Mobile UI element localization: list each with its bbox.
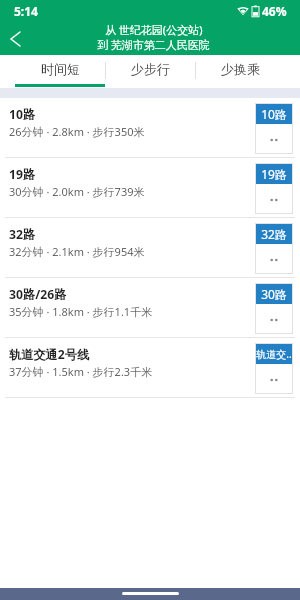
staticText: 32路: [261, 226, 287, 242]
button[interactable]: 少步行: [105, 55, 195, 88]
staticText: 30路/26路: [9, 286, 67, 303]
staticText: 30分钟 · 2.0km · 步行739米: [9, 184, 145, 199]
button[interactable]: 轨道交通2号线: [0, 338, 300, 397]
button[interactable]: 少换乘: [195, 55, 285, 88]
staticText: 35分钟 · 1.8km · 步行1.1千米: [9, 304, 153, 319]
button[interactable]: 时间短: [15, 55, 105, 88]
staticText: 46%: [262, 3, 287, 19]
button[interactable]: 19路: [0, 158, 300, 217]
staticText: 30路: [261, 286, 287, 302]
button[interactable]: 10路: [0, 98, 300, 157]
staticText: 少换乘: [221, 61, 260, 77]
staticText: 10路: [261, 106, 287, 122]
staticText: 26分钟 · 2.8km · 步行350米: [9, 124, 145, 139]
button[interactable]: Back: [0, 24, 30, 54]
button[interactable]: 32路: [0, 218, 300, 277]
staticText: 时间短: [41, 61, 80, 77]
staticText: 5:14: [14, 3, 38, 19]
staticText: 32分钟 · 2.1km · 步行954米: [9, 244, 145, 259]
staticText: 10路: [9, 106, 36, 123]
button[interactable]: 30路/26路: [0, 278, 300, 337]
staticText: 19路: [9, 166, 36, 183]
staticText: 轨道交通2号线: [9, 346, 90, 363]
staticText: 37分钟 · 1.5km · 步行2.3千米: [9, 364, 153, 379]
staticText: 从 世纪花园(公交站): [105, 22, 203, 37]
staticText: 32路: [9, 226, 36, 243]
staticText: 到 芜湖市第二人民医院: [97, 37, 210, 52]
staticText: 少步行: [131, 61, 170, 77]
staticText: 轨道交..: [256, 347, 292, 361]
staticText: 19路: [261, 166, 287, 182]
